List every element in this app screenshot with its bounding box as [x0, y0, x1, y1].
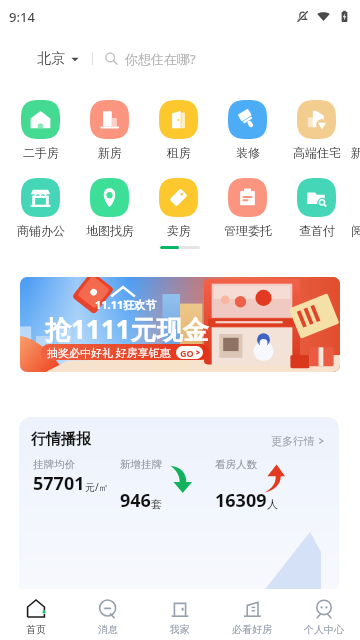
button[interactable]: 北京: [21, 35, 339, 82]
staticText: 管理委托: [224, 223, 272, 238]
staticText: 抽奖必中好礼 好房享钜惠: [47, 345, 171, 360]
button[interactable]: 高端住宅: [282, 100, 351, 160]
staticText: 新增挂牌: [120, 458, 162, 471]
button[interactable]: 查首付: [282, 178, 351, 238]
button[interactable]: 二手房: [6, 100, 75, 160]
staticText: 人: [267, 497, 278, 511]
button[interactable]: 个人中心: [288, 589, 360, 640]
staticText: 租房: [167, 145, 191, 160]
button[interactable]: 更多行情: [271, 434, 325, 448]
staticText: 装修: [236, 145, 260, 160]
staticText: 946: [120, 488, 151, 513]
staticText: 9:14: [9, 8, 35, 26]
staticText: 我家: [170, 623, 190, 636]
button[interactable]: 消息: [72, 589, 144, 640]
staticText: 商铺办公: [17, 223, 65, 238]
button[interactable]: 新房: [75, 100, 144, 160]
staticText: 行情播报: [31, 430, 91, 449]
button[interactable]: 行情播报: [19, 417, 339, 597]
staticText: 16309: [215, 488, 267, 513]
staticText: 地图找房: [86, 223, 134, 238]
staticText: GO: [180, 347, 194, 359]
button[interactable]: 地图找房: [75, 178, 144, 238]
button[interactable]: 装修: [213, 100, 282, 160]
staticText: 首页: [26, 623, 46, 636]
staticText: 个人中心: [304, 623, 344, 636]
staticText: 抢1111元现金: [45, 311, 209, 347]
staticText: 挂牌均价: [33, 458, 75, 471]
button[interactable]: 11.11狂欢节: [20, 277, 340, 372]
staticText: 高端住宅: [293, 145, 341, 160]
staticText: 北京: [37, 50, 65, 68]
staticText: 11.11狂欢节: [95, 297, 157, 312]
staticText: 必看好房: [232, 623, 272, 636]
staticText: 看房人数: [215, 458, 257, 471]
button[interactable]: 租房: [144, 100, 213, 160]
staticText: 新: [351, 145, 360, 160]
button[interactable]: 商铺办公: [6, 178, 75, 238]
staticText: 你想住在哪?: [125, 50, 196, 68]
staticText: 消息: [98, 623, 118, 636]
staticText: 更多行情: [271, 434, 315, 448]
button[interactable]: 必看好房: [216, 589, 288, 640]
button[interactable]: 我家: [144, 589, 216, 640]
staticText: 卖房: [167, 223, 191, 238]
staticText: 57701: [33, 471, 85, 496]
staticText: 元/㎡: [85, 480, 109, 494]
staticText: 阅: [351, 223, 360, 238]
button[interactable]: 管理委托: [213, 178, 282, 238]
button[interactable]: 首页: [0, 589, 72, 640]
staticText: 二手房: [23, 145, 59, 160]
staticText: 套: [151, 497, 162, 511]
button[interactable]: 卖房: [144, 178, 213, 238]
staticText: 查首付: [299, 223, 335, 238]
staticText: 新房: [98, 145, 122, 160]
